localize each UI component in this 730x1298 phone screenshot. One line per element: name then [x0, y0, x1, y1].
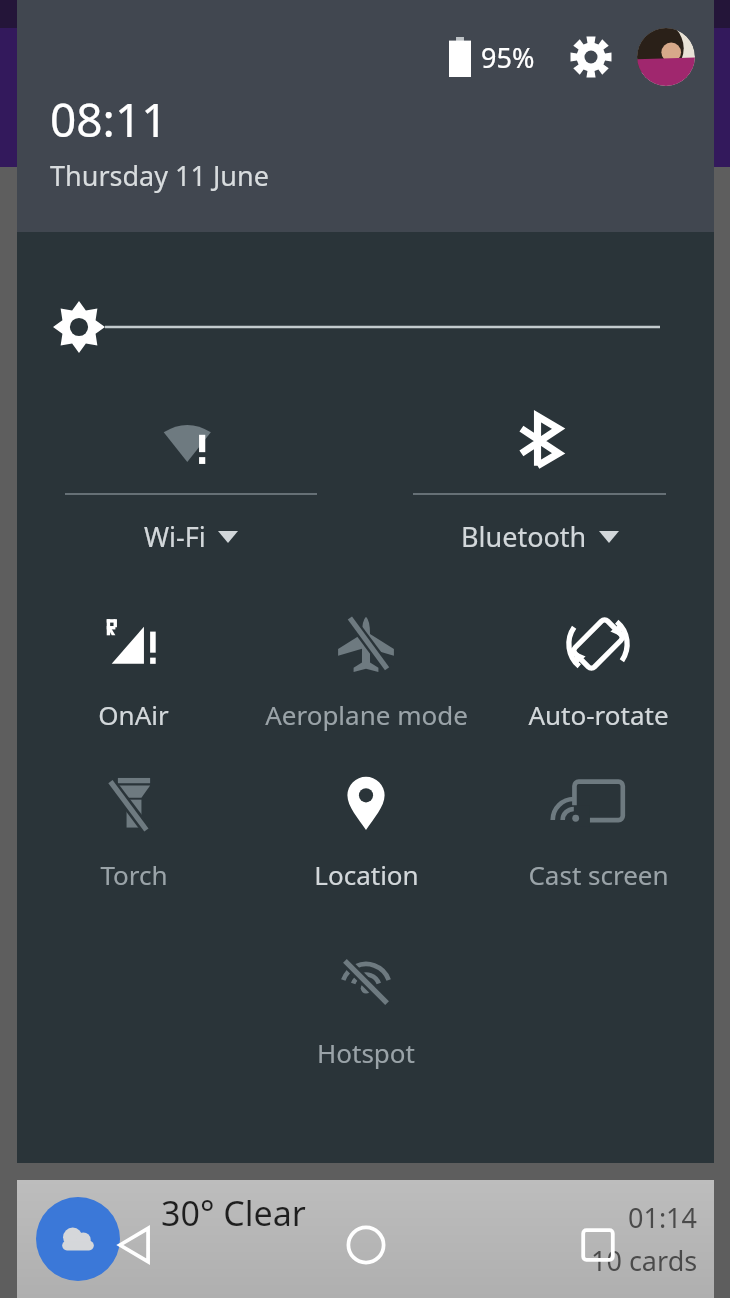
button[interactable]: User profile [637, 28, 695, 86]
button[interactable]: Aeroplane mode [250, 597, 482, 732]
staticText: Location [314, 857, 419, 892]
button[interactable]: Auto-rotate [482, 597, 714, 732]
button[interactable]: OnAir [17, 597, 250, 732]
staticText: Bluetooth [461, 518, 587, 555]
staticText: 95% [481, 39, 535, 76]
staticText: Thursday 11 June [50, 157, 269, 194]
staticText: 01:14 [628, 1199, 698, 1236]
button[interactable]: Wi-Fi [17, 402, 365, 555]
button[interactable]: Bluetooth [365, 402, 714, 555]
button[interactable]: Torch [17, 757, 250, 892]
staticText: Hotspot [317, 1035, 415, 1070]
button[interactable]: Back [17, 1214, 250, 1276]
button[interactable]: Location [250, 757, 482, 892]
staticText: OnAir [98, 697, 169, 732]
button[interactable]: Cast screen [482, 757, 714, 892]
button[interactable]: 30° Clear [17, 1180, 714, 1298]
staticText: 10 cards [591, 1242, 698, 1279]
staticText: Wi-Fi [144, 518, 206, 555]
button[interactable]: Recent apps [482, 1214, 714, 1276]
button[interactable]: Brightness [53, 290, 660, 364]
staticText: Aeroplane mode [265, 697, 468, 732]
staticText: Torch [100, 857, 168, 892]
button[interactable]: Settings [563, 29, 619, 85]
button[interactable]: Hotspot [250, 935, 482, 1070]
staticText: Auto-rotate [528, 697, 669, 732]
staticText: 08:11 [50, 88, 168, 151]
staticText: 30° Clear [161, 1190, 306, 1236]
button[interactable]: Home [250, 1214, 482, 1276]
staticText: Cast screen [528, 857, 669, 892]
